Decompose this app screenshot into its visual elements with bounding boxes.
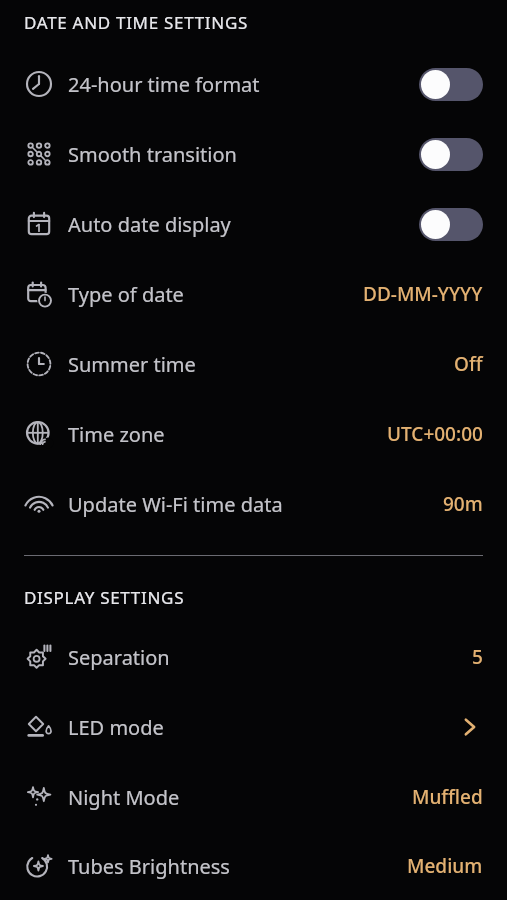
button[interactable]: Toggle	[419, 138, 483, 171]
button[interactable]: Open LED mode	[457, 714, 483, 740]
button[interactable]: Toggle	[419, 68, 483, 101]
staticText: Muffled	[412, 784, 483, 810]
staticText: Tubes Brightness	[68, 853, 407, 880]
staticText: DATE AND TIME SETTINGS	[24, 11, 249, 34]
button[interactable]: Auto date display	[0, 189, 507, 259]
button[interactable]: Night Mode	[0, 762, 507, 832]
staticText: Off	[454, 351, 483, 377]
button[interactable]: Smooth transition	[0, 119, 507, 189]
staticText: Smooth transition	[68, 141, 419, 168]
staticText: Separation	[68, 644, 472, 671]
staticText: Medium	[407, 853, 483, 879]
staticText: Auto date display	[68, 211, 419, 238]
staticText: UTC+00:00	[387, 421, 483, 447]
button[interactable]: Separation	[0, 622, 507, 692]
button[interactable]: Type of date	[0, 259, 507, 329]
staticText: 90m	[443, 491, 483, 517]
button[interactable]: Update Wi-Fi time data	[0, 469, 507, 539]
button[interactable]: Time zone	[0, 399, 507, 469]
button[interactable]: LED mode	[0, 692, 507, 762]
staticText: DISPLAY SETTINGS	[24, 586, 185, 609]
staticText: Update Wi-Fi time data	[68, 491, 443, 518]
staticText: 24-hour time format	[68, 71, 419, 98]
staticText: LED mode	[68, 714, 457, 741]
staticText: Time zone	[68, 421, 387, 448]
staticText: 5	[472, 644, 483, 670]
staticText: Night Mode	[68, 784, 412, 811]
button[interactable]: Tubes Brightness	[0, 832, 507, 900]
staticText: Type of date	[68, 281, 363, 308]
button[interactable]: 24-hour time format	[0, 49, 507, 119]
staticText: Summer time	[68, 351, 454, 378]
button[interactable]: Toggle	[419, 208, 483, 241]
staticText: DD-MM-YYYY	[363, 281, 483, 307]
button[interactable]: Summer time	[0, 329, 507, 399]
